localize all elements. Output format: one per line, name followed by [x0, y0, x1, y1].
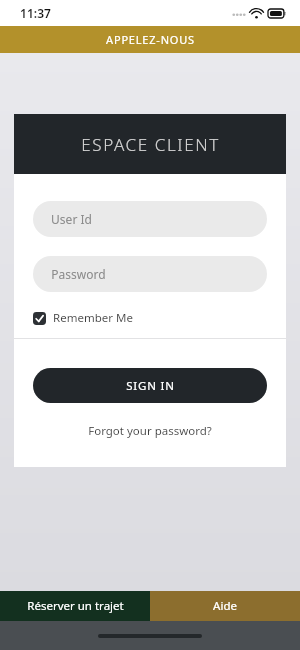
button[interactable]: Remember Me — [33, 310, 133, 326]
button[interactable]: SIGN IN — [33, 368, 267, 403]
button[interactable]: Forgot your password? — [82, 421, 218, 441]
button[interactable]: APPELEZ-NOUS — [0, 26, 300, 53]
staticText: ESPACE CLIENT — [81, 133, 220, 156]
button[interactable]: User Id — [33, 201, 267, 237]
staticText: APPELEZ-NOUS — [106, 32, 195, 47]
staticText: SIGN IN — [126, 378, 175, 394]
button[interactable]: Aide — [150, 591, 300, 621]
staticText: User Id — [51, 211, 92, 227]
staticText: Remember Me — [53, 310, 133, 326]
staticText: Aide — [213, 598, 237, 614]
staticText: 11:37 — [20, 5, 51, 21]
staticText: Password — [51, 266, 106, 282]
staticText: Réserver un trajet — [27, 598, 124, 614]
button[interactable]: Réserver un trajet — [0, 591, 150, 621]
button[interactable]: Password — [33, 256, 267, 292]
